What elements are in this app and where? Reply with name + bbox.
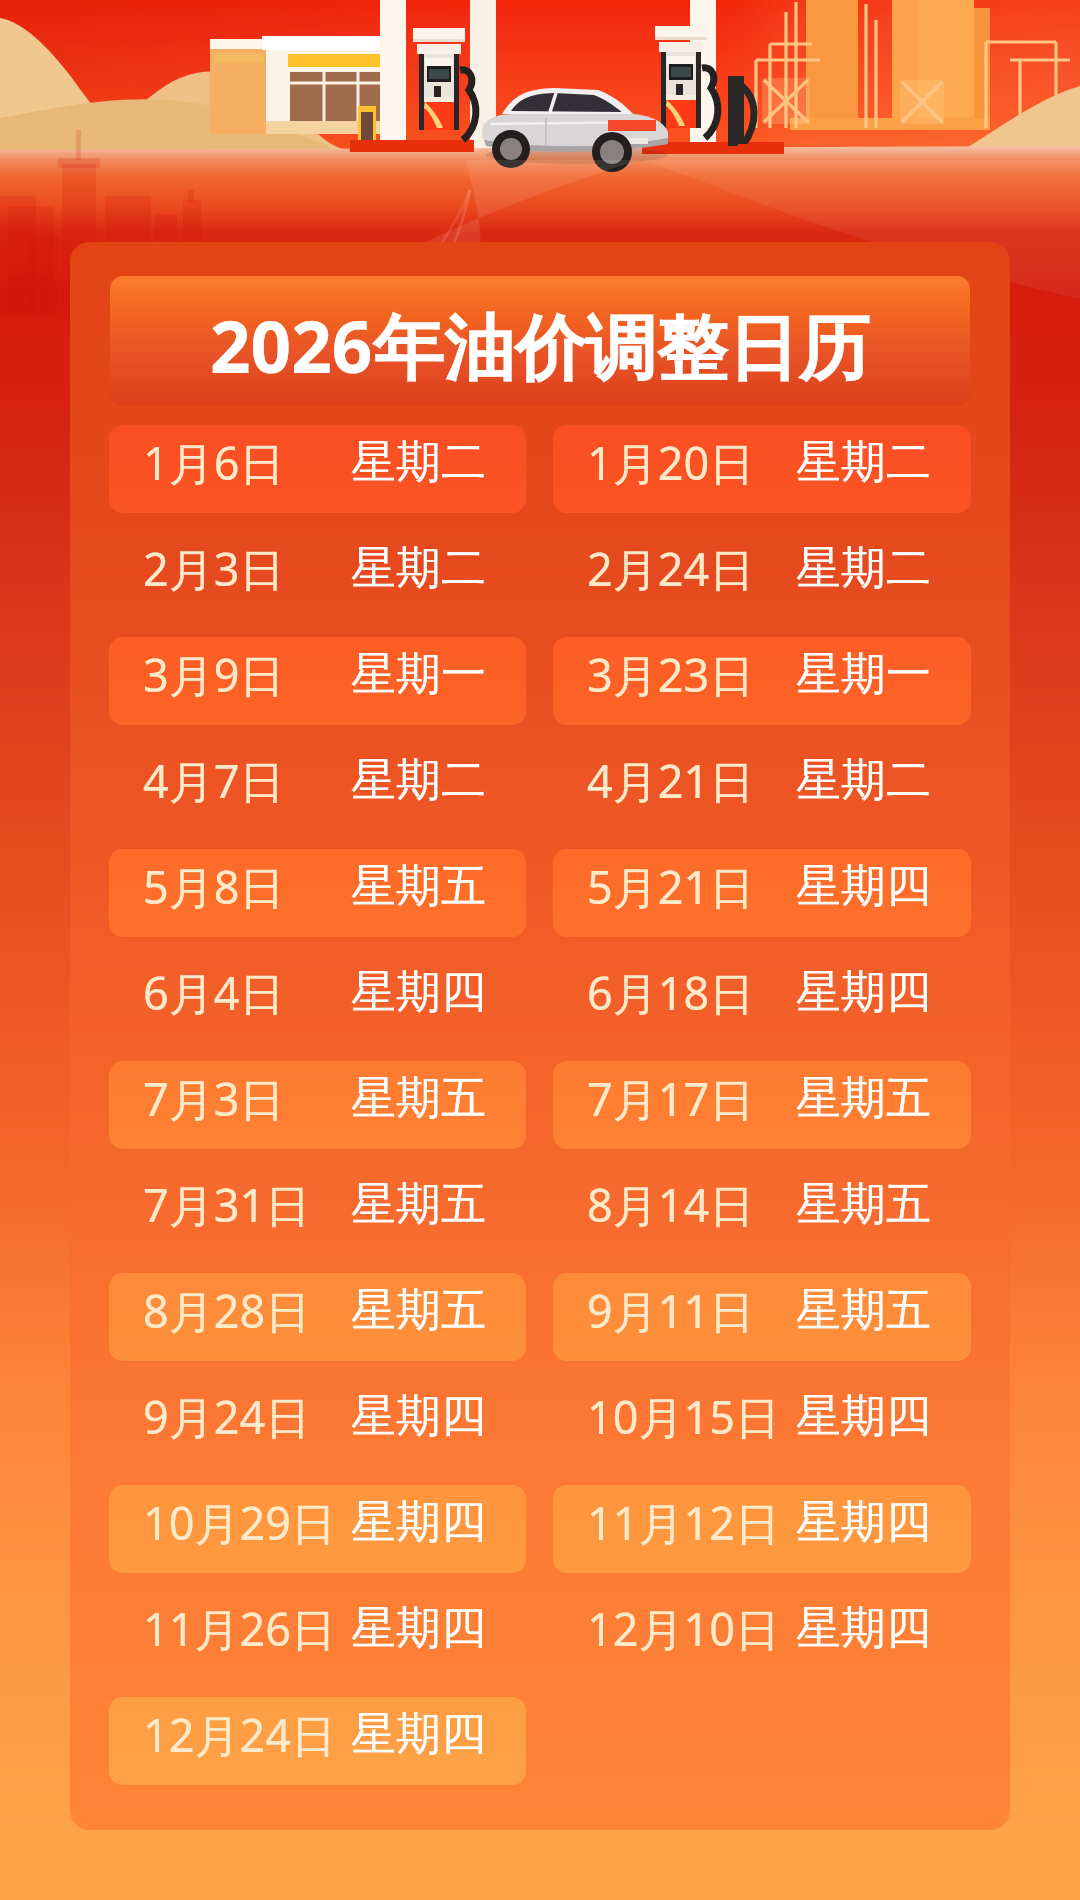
button[interactable]: 12月10日 [553,1591,971,1679]
staticText: 星期一 [796,646,931,703]
button[interactable]: 6月4日 [109,955,526,1043]
staticText: 星期五 [796,1282,931,1339]
button[interactable]: 5月8日 [109,849,526,937]
staticText: 星期一 [351,646,486,703]
staticText: 星期四 [351,1494,486,1551]
staticText: 2026年油价调整日历 [210,297,870,394]
staticText: 星期四 [351,1600,486,1657]
button[interactable]: 9月24日 [109,1379,526,1467]
button[interactable]: 1月20日 [553,425,971,513]
staticText: 星期二 [351,434,486,491]
staticText: 8月14日 [587,1174,755,1235]
staticText: 4月7日 [143,750,285,811]
staticText: 星期四 [796,1494,931,1551]
staticText: 星期四 [351,1388,486,1445]
button[interactable]: 9月11日 [553,1273,971,1361]
staticText: 9月11日 [587,1280,755,1341]
staticText: 星期五 [796,1176,931,1233]
button[interactable]: 2月24日 [553,531,971,619]
staticText: 11月26日 [143,1598,336,1659]
button[interactable]: 4月7日 [109,743,526,831]
staticText: 星期二 [796,752,931,809]
staticText: 9月24日 [143,1386,311,1447]
button[interactable]: 1月6日 [109,425,526,513]
staticText: 星期二 [796,540,931,597]
staticText: 7月3日 [143,1068,285,1129]
staticText: 10月29日 [143,1492,336,1553]
staticText: 星期四 [351,1706,486,1763]
staticText: 3月23日 [587,644,755,705]
button[interactable]: 8月14日 [553,1167,971,1255]
button[interactable]: 8月28日 [109,1273,526,1361]
staticText: 星期四 [796,1388,931,1445]
staticText: 星期二 [351,540,486,597]
staticText: 星期四 [351,964,486,1021]
button[interactable]: 6月18日 [553,955,971,1043]
staticText: 7月17日 [587,1068,755,1129]
staticText: 星期五 [351,1176,486,1233]
staticText: 1月6日 [143,432,285,493]
button[interactable]: 7月31日 [109,1167,526,1255]
staticText: 10月15日 [587,1386,780,1447]
button[interactable]: 7月17日 [553,1061,971,1149]
staticText: 11月12日 [587,1492,780,1553]
button[interactable]: 11月12日 [553,1485,971,1573]
staticText: 4月21日 [587,750,755,811]
staticText: 星期二 [351,752,486,809]
staticText: 6月18日 [587,962,755,1023]
button[interactable]: 5月21日 [553,849,971,937]
staticText: 12月24日 [143,1704,336,1765]
button[interactable]: 3月23日 [553,637,971,725]
staticText: 1月20日 [587,432,755,493]
button[interactable]: 2月3日 [109,531,526,619]
staticText: 12月10日 [587,1598,780,1659]
button[interactable]: 7月3日 [109,1061,526,1149]
button[interactable]: 10月15日 [553,1379,971,1467]
staticText: 8月28日 [143,1280,311,1341]
staticText: 星期五 [351,858,486,915]
staticText: 星期五 [351,1282,486,1339]
staticText: 星期五 [351,1070,486,1127]
staticText: 5月8日 [143,856,285,917]
staticText: 星期四 [796,964,931,1021]
button[interactable]: 11月26日 [109,1591,526,1679]
staticText: 星期五 [796,1070,931,1127]
staticText: 5月21日 [587,856,755,917]
staticText: 3月9日 [143,644,285,705]
staticText: 2月24日 [587,538,755,599]
button[interactable]: 3月9日 [109,637,526,725]
staticText: 星期二 [796,434,931,491]
staticText: 星期四 [796,1600,931,1657]
staticText: 6月4日 [143,962,285,1023]
staticText: 2月3日 [143,538,285,599]
staticText: 7月31日 [143,1174,311,1235]
button[interactable]: 12月24日 [109,1697,526,1785]
staticText: 星期四 [796,858,931,915]
button[interactable]: 4月21日 [553,743,971,831]
button[interactable]: 10月29日 [109,1485,526,1573]
